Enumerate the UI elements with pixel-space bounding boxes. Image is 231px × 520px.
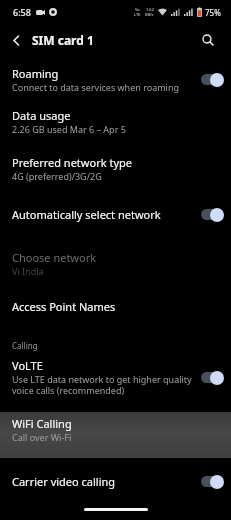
- staticText: SIM card 1: [32, 32, 94, 48]
- staticText: 1.62: [146, 7, 154, 12]
- staticText: Use LTE data network to get higher quali…: [12, 373, 192, 396]
- staticText: VoLTE: [12, 358, 43, 373]
- staticText: Data usage: [12, 108, 71, 123]
- staticText: Vi India: [12, 265, 44, 277]
- staticText: Automatically select network: [12, 207, 161, 222]
- button[interactable]: VoLTE: [0, 358, 231, 396]
- staticText: Carrier video calling: [12, 474, 116, 489]
- button[interactable]: [0, 24, 32, 56]
- button[interactable]: Roaming: [0, 66, 231, 93]
- button[interactable]: WiFi Calling: [0, 412, 231, 458]
- button[interactable]: Access Point Names: [0, 299, 231, 314]
- staticText: Preferred network type: [12, 155, 132, 170]
- staticText: Call over Wi-Fi: [12, 431, 72, 443]
- staticText: Calling: [12, 340, 38, 351]
- button[interactable]: Data usage: [0, 108, 231, 135]
- button[interactable]: Choose network: [0, 250, 231, 277]
- staticText: 6:58: [13, 6, 31, 18]
- staticText: 75%: [205, 7, 221, 18]
- staticText: LTE: [134, 12, 141, 17]
- button[interactable]: Carrier video calling: [0, 474, 231, 489]
- button[interactable]: Automatically select network: [0, 207, 231, 222]
- staticText: WiFi Calling: [12, 416, 72, 431]
- button[interactable]: Preferred network type: [0, 155, 231, 182]
- staticText: Choose network: [12, 250, 97, 265]
- staticText: Connect to data services when roaming: [12, 81, 180, 93]
- staticText: Roaming: [12, 66, 59, 81]
- staticText: KB/s: [145, 12, 154, 17]
- staticText: 4G (preferred)/3G/2G: [12, 170, 102, 182]
- staticText: Vo: [135, 7, 140, 12]
- staticText: Access Point Names: [12, 299, 116, 314]
- button[interactable]: [190, 24, 226, 56]
- staticText: 2.26 GB used Mar 6 – Apr 5: [12, 123, 126, 135]
